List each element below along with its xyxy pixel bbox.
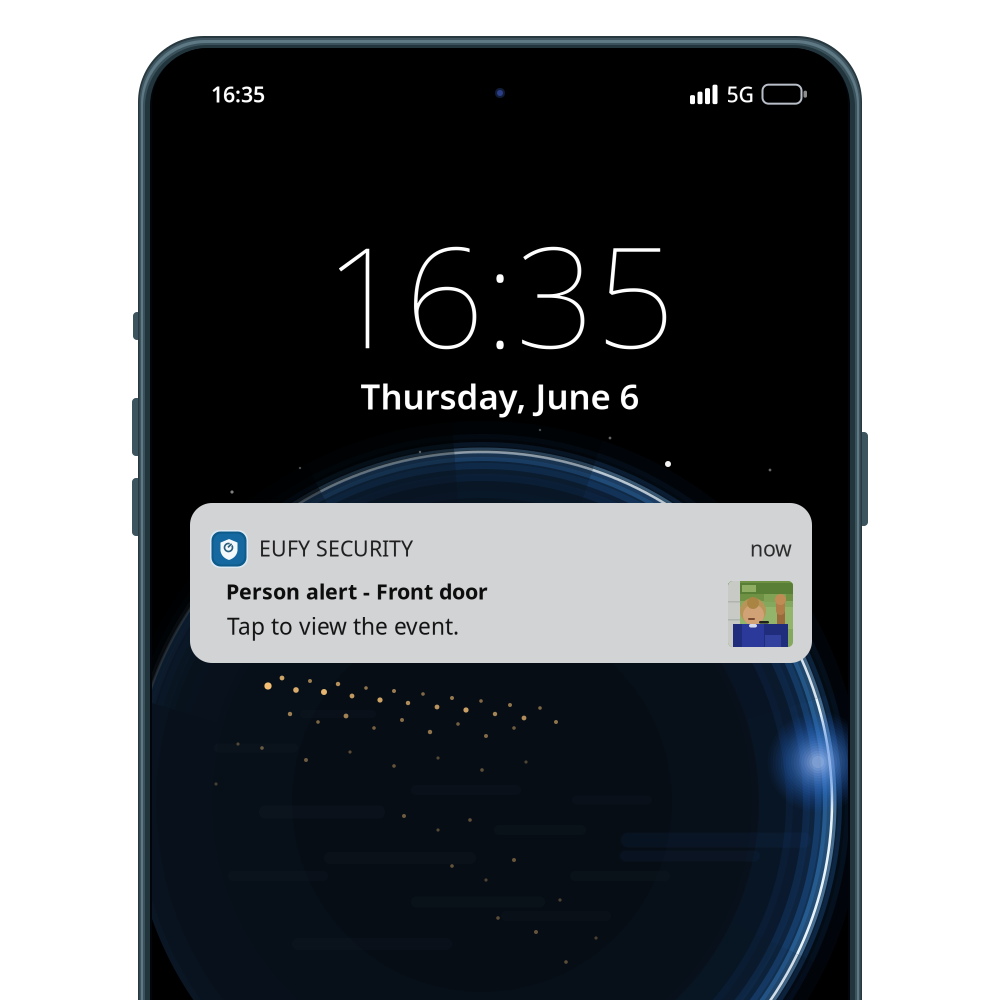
staticText: EUFY SECURITY xyxy=(259,534,413,562)
staticText: Tap to view the event. xyxy=(227,611,459,641)
staticText: 16:35 xyxy=(211,80,265,108)
staticText: Thursday, June 6 xyxy=(360,373,639,419)
staticText: 5G xyxy=(726,80,754,108)
button[interactable]: EUFY SECURITY xyxy=(190,503,812,663)
staticText: 16:35 xyxy=(324,201,675,387)
staticText: Person alert - Front door xyxy=(226,577,488,605)
staticText: now xyxy=(750,534,792,562)
